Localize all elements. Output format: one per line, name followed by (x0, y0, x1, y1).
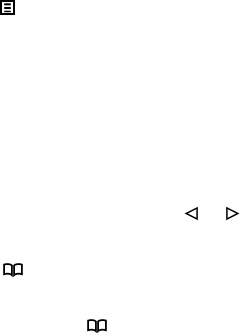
button[interactable]: Book (87, 319, 107, 332)
button[interactable]: Next (226, 207, 239, 220)
button[interactable]: Library (3, 263, 23, 276)
button[interactable]: Menu (0, 0, 15, 15)
button[interactable]: Previous (185, 207, 198, 220)
